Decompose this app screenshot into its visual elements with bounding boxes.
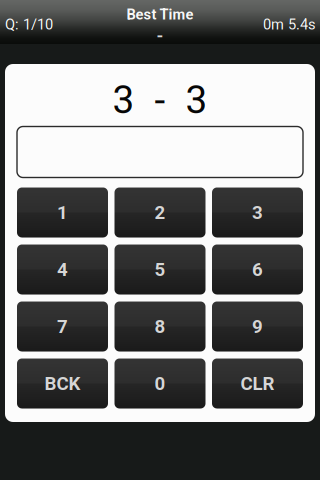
staticText: 6 — [252, 259, 263, 280]
staticText: 7 — [57, 316, 68, 337]
staticText: - — [156, 25, 163, 45]
staticText: Q: 1/10 — [5, 16, 53, 33]
staticText: 2 — [154, 202, 165, 223]
staticText: 3 — [252, 202, 263, 223]
staticText: 0m 5.4s — [263, 16, 316, 33]
button[interactable]: CLR — [212, 358, 303, 408]
staticText: 1 — [57, 202, 68, 223]
staticText: Best Time — [126, 6, 193, 23]
staticText: BCK — [44, 373, 80, 394]
staticText: CLR — [240, 373, 274, 394]
button[interactable]: 4 — [17, 244, 108, 294]
button[interactable]: 0 — [114, 358, 205, 408]
staticText: 9 — [252, 316, 263, 337]
button[interactable]: BCK — [17, 358, 108, 408]
button[interactable]: 6 — [212, 244, 303, 294]
button[interactable]: 1 — [17, 187, 108, 237]
button[interactable]: 7 — [17, 301, 108, 351]
button[interactable]: 5 — [114, 244, 205, 294]
staticText: 5 — [154, 259, 165, 280]
staticText: 4 — [57, 259, 68, 280]
staticText: 8 — [154, 316, 165, 337]
staticText: 0 — [154, 373, 165, 394]
staticText: 3 - 3 — [112, 77, 207, 123]
button[interactable]: 9 — [212, 301, 303, 351]
button[interactable]: 3 — [212, 187, 303, 237]
button[interactable]: 2 — [114, 187, 205, 237]
button[interactable]: 8 — [114, 301, 205, 351]
